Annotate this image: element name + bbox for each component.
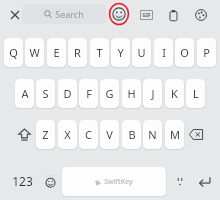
button[interactable]: GIF [137, 6, 155, 24]
button[interactable]: Backspace [182, 120, 210, 149]
staticText: P [203, 45, 210, 60]
button[interactable] [168, 166, 192, 196]
staticText: N [148, 127, 157, 142]
staticText: Y [117, 45, 124, 60]
button[interactable]: U [132, 38, 151, 67]
button[interactable]: D [58, 79, 77, 108]
staticText: X [64, 127, 71, 142]
staticText: SwiftKey [104, 177, 133, 187]
staticText: T [96, 45, 103, 60]
button[interactable]: Emoji [108, 3, 130, 25]
button[interactable]: Z [36, 120, 55, 149]
staticText: H [127, 86, 136, 101]
button[interactable]: K [165, 79, 184, 108]
button[interactable]: E [47, 38, 66, 67]
button[interactable]: S [36, 79, 55, 108]
button[interactable]: L [186, 79, 205, 108]
button[interactable]: Themes [192, 6, 210, 24]
button[interactable]: Clipboard [164, 6, 182, 24]
staticText: D [63, 86, 72, 101]
button[interactable]: Space [62, 167, 166, 196]
button[interactable]: V [100, 120, 119, 149]
button[interactable]: B [122, 120, 141, 149]
staticText: I [162, 45, 166, 60]
button[interactable]: O [175, 38, 194, 67]
button[interactable]: N [143, 120, 162, 149]
staticText: O [180, 45, 189, 60]
staticText: 123 [12, 173, 33, 189]
staticText: J [151, 86, 155, 101]
button[interactable]: R [68, 38, 87, 67]
button[interactable]: I [154, 38, 173, 67]
staticText: C [85, 127, 92, 142]
button[interactable]: X [58, 120, 77, 149]
button[interactable]: T [90, 38, 109, 67]
staticText: S [42, 86, 49, 101]
button[interactable]: J [143, 79, 162, 108]
staticText: G [105, 86, 114, 101]
button[interactable]: Close [6, 6, 24, 24]
staticText: Z [42, 127, 49, 142]
button[interactable]: 123 [6, 166, 38, 196]
staticText: L [193, 86, 199, 101]
button[interactable]: Search [22, 4, 106, 24]
button[interactable]: Y [111, 38, 130, 67]
staticText: K [171, 86, 178, 101]
button[interactable]: G [100, 79, 119, 108]
staticText: Search [55, 8, 84, 20]
staticText: Q [9, 45, 18, 60]
staticText: GIF [142, 12, 151, 19]
button[interactable]: Shift [10, 120, 38, 149]
staticText: F [86, 86, 92, 101]
staticText: V [106, 127, 113, 142]
button[interactable]: F [79, 79, 98, 108]
button[interactable]: M [165, 120, 184, 149]
button[interactable]: Emoji keyboard [38, 166, 62, 196]
staticText: A [21, 86, 29, 101]
button[interactable]: Q [4, 38, 23, 67]
staticText: B [128, 127, 136, 142]
button[interactable]: H [122, 79, 141, 108]
button[interactable]: A [15, 79, 34, 108]
staticText: M [170, 127, 180, 142]
staticText: E [53, 45, 60, 60]
button[interactable]: C [79, 120, 98, 149]
button[interactable]: W [25, 38, 44, 67]
staticText: R [74, 45, 81, 60]
button[interactable]: Enter [192, 166, 216, 196]
staticText: W [29, 45, 40, 60]
staticText: U [137, 45, 146, 60]
button[interactable]: P [197, 38, 216, 67]
